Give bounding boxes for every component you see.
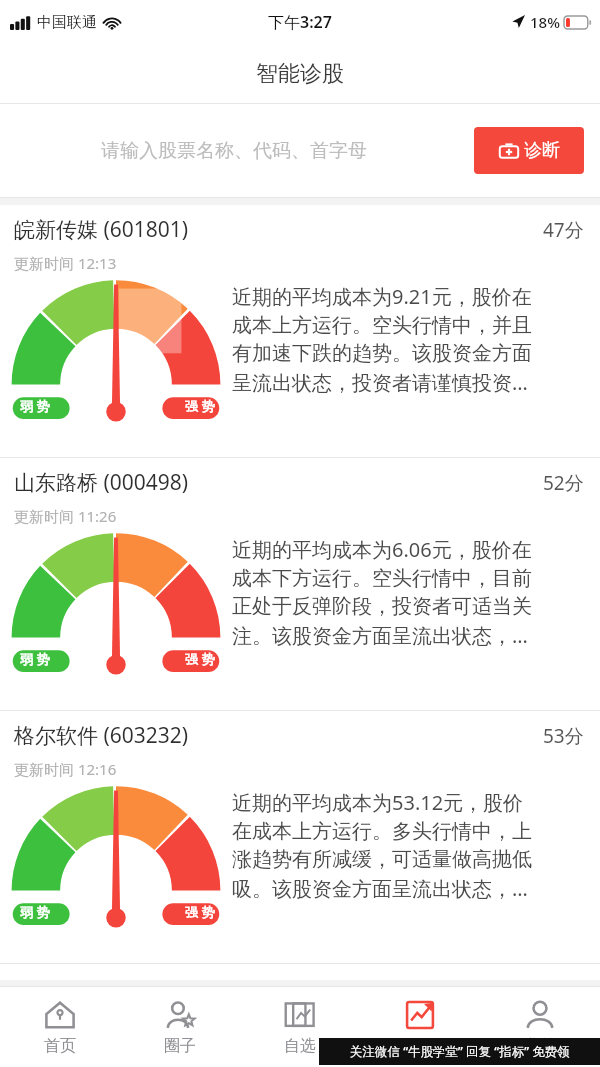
staticText: 吸。该股资金方面呈流出状态，… [232, 875, 528, 902]
staticText: 强 势 [185, 903, 215, 921]
staticText: 近期的平均成本为9.21元，股价在 [232, 283, 532, 310]
staticText: 成本下方运行。空头行情中，目前 [232, 566, 532, 591]
button[interactable]: 诊断 [474, 127, 584, 174]
staticText: 18% [530, 12, 560, 32]
button[interactable]: 自选 [240, 987, 360, 1067]
staticText: 近期的平均成本为53.12元，股价 [232, 789, 524, 816]
button[interactable]: 山东路桥 (000498) [0, 458, 600, 711]
staticText: 强 势 [185, 650, 215, 668]
button[interactable]: 我的 [480, 987, 600, 1067]
staticText: 自选 [284, 1036, 316, 1056]
staticText: 诊股 [404, 1036, 436, 1056]
staticText: 首页 [44, 1036, 76, 1056]
staticText: 格尔软件 (603232) [14, 721, 189, 750]
staticText: 中国联通 [37, 13, 97, 32]
staticText: 呈流出状态，投资者请谨慎投资… [232, 369, 528, 396]
staticText: 成本上方运行。空头行情中，并且 [232, 313, 532, 338]
staticText: 有加速下跌的趋势。该股资金方面 [232, 341, 532, 366]
staticText: 弱 势 [20, 397, 50, 415]
staticText: 弱 势 [20, 903, 50, 921]
staticText: 53分 [543, 723, 584, 749]
staticText: 弱 势 [20, 650, 50, 668]
staticText: 强 势 [185, 397, 215, 415]
staticText: 圈子 [164, 1036, 196, 1056]
staticText: 涨趋势有所减缓，可适量做高抛低 [232, 847, 532, 872]
button[interactable]: 请输入股票名称、代码、首字母 [14, 125, 454, 177]
staticText: 山东路桥 (000498) [14, 468, 189, 497]
staticText: 皖新传媒 (601801) [14, 215, 189, 244]
staticText: 近期的平均成本为6.06元，股价在 [232, 536, 532, 563]
staticText: 在成本上方运行。多头行情中，上 [232, 819, 532, 844]
button[interactable]: 圈子 [120, 987, 240, 1067]
staticText: 智能诊股 [256, 60, 344, 88]
button[interactable]: 诊股 [360, 987, 480, 1067]
staticText: 下午3:27 [268, 11, 332, 33]
staticText: 注。该股资金方面呈流出状态，… [232, 622, 528, 649]
button[interactable]: 皖新传媒 (601801) [0, 205, 600, 458]
staticText: 52分 [543, 470, 584, 496]
staticText: 更新时间 12:16 [14, 759, 117, 779]
staticText: 正处于反弹阶段，投资者可适当关 [232, 594, 532, 619]
staticText: 更新时间 12:13 [14, 253, 117, 273]
staticText: 诊断 [524, 139, 560, 162]
staticText: 我的 [524, 1036, 556, 1056]
button[interactable]: 首页 [0, 987, 120, 1067]
staticText: 请输入股票名称、代码、首字母 [101, 139, 367, 163]
staticText: 更新时间 11:26 [14, 506, 117, 526]
staticText: 关注微信 “牛股学堂” 回复 “指标” 免费领 [350, 1043, 570, 1060]
button[interactable]: 格尔软件 (603232) [0, 711, 600, 964]
staticText: 47分 [543, 217, 584, 243]
